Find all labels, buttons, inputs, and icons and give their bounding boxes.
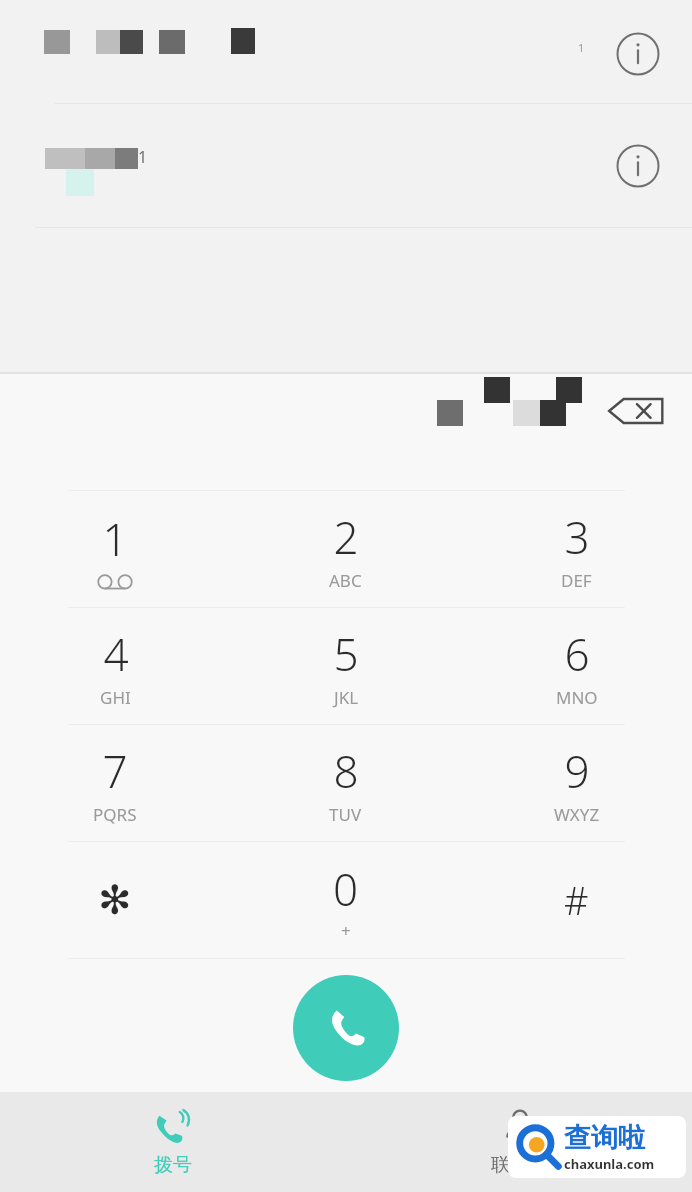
button[interactable]: 联系人: [346, 1092, 692, 1192]
button[interactable]: 4: [0, 608, 230, 724]
button[interactable]: 1: [0, 104, 692, 228]
staticText: WXYZ: [554, 803, 600, 826]
staticText: 拨号: [154, 1153, 192, 1177]
button[interactable]: 8: [230, 725, 461, 841]
staticText: 查询啦: [564, 1121, 645, 1155]
button[interactable]: 7: [0, 725, 230, 841]
staticText: 4: [103, 624, 129, 684]
button[interactable]: #: [461, 842, 692, 958]
staticText: +: [341, 919, 351, 942]
staticText: chaxunla.com: [564, 1155, 655, 1173]
button[interactable]: 1: [0, 0, 692, 104]
staticText: GHI: [100, 686, 131, 709]
button[interactable]: Backspace: [605, 386, 667, 436]
button[interactable]: 2: [230, 491, 461, 607]
staticText: TUV: [329, 803, 362, 826]
staticText: 1: [102, 509, 128, 569]
button[interactable]: 6: [461, 608, 692, 724]
staticText: PQRS: [93, 803, 137, 826]
staticText: 8: [333, 741, 359, 801]
staticText: 联系人: [491, 1153, 548, 1177]
button[interactable]: 1: [0, 491, 230, 607]
button[interactable]: Call: [293, 975, 399, 1081]
button[interactable]: Call details: [612, 140, 664, 192]
button[interactable]: 0: [230, 842, 461, 958]
button[interactable]: 拨号: [0, 1092, 346, 1192]
staticText: 1: [138, 146, 148, 168]
staticText: 0: [333, 859, 359, 919]
staticText: DEF: [561, 569, 592, 592]
staticText: 5: [333, 624, 359, 684]
staticText: 3: [564, 507, 590, 567]
staticText: #: [564, 874, 589, 926]
staticText: ✻: [98, 877, 132, 924]
staticText: ABC: [329, 569, 362, 592]
button[interactable]: 3: [461, 491, 692, 607]
button[interactable]: Call details: [612, 28, 664, 80]
button[interactable]: ✻: [0, 842, 230, 958]
staticText: 9: [564, 741, 590, 801]
button[interactable]: 9: [461, 725, 692, 841]
staticText: 6: [564, 624, 590, 684]
staticText: JKL: [334, 686, 359, 709]
staticText: MNO: [556, 686, 598, 709]
staticText: 2: [333, 507, 359, 567]
staticText: 1: [578, 40, 585, 55]
button[interactable]: 5: [230, 608, 461, 724]
staticText: 7: [102, 741, 128, 801]
